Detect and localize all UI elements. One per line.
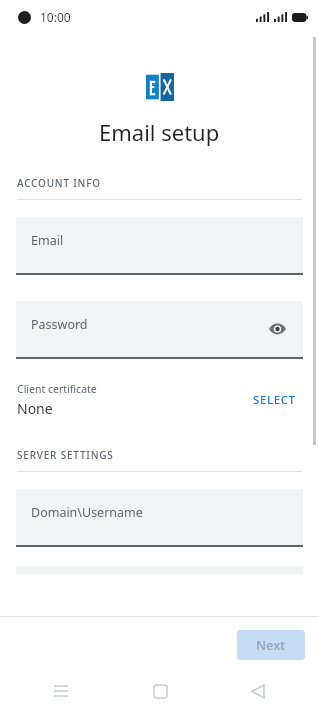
staticText: SELECT — [253, 392, 296, 408]
staticText: Email — [31, 232, 64, 249]
staticText: SERVER SETTINGS — [17, 448, 114, 462]
staticText: Email setup — [99, 117, 220, 147]
button[interactable]: Domain\Username — [16, 489, 303, 547]
button[interactable]: Recent apps — [44, 674, 78, 708]
button[interactable]: Email — [16, 217, 303, 275]
staticText: Next — [256, 636, 286, 654]
button[interactable]: Back — [241, 674, 275, 708]
staticText: ACCOUNT INFO — [17, 176, 101, 190]
staticText: Domain\Username — [31, 504, 143, 521]
button[interactable]: Password — [16, 301, 303, 359]
button[interactable]: SELECT — [247, 386, 302, 414]
button[interactable]: Client certificate — [17, 377, 302, 423]
staticText: Password — [31, 316, 88, 333]
staticText: 10:00 — [40, 9, 71, 25]
staticText: Client certificate — [17, 382, 97, 396]
staticText: None — [17, 399, 53, 418]
button[interactable]: Home — [143, 674, 177, 708]
button[interactable]: Next — [237, 630, 305, 660]
button[interactable]: Show password — [264, 316, 290, 342]
